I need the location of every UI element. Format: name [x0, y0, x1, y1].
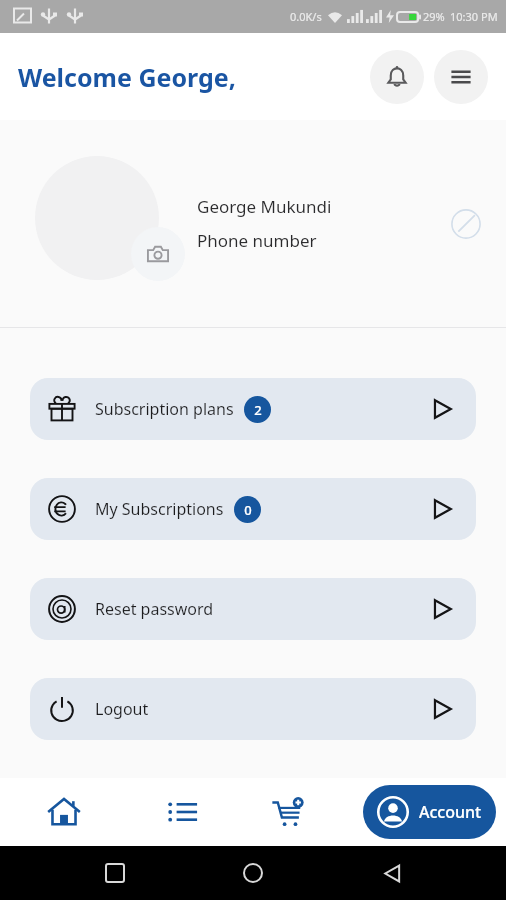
button[interactable]: Change photo: [131, 227, 185, 281]
button[interactable]: Open Reset password: [422, 589, 462, 629]
staticText: Phone number: [197, 229, 317, 252]
staticText: Welcome George,: [18, 60, 236, 94]
button[interactable]: Logout: [30, 678, 476, 740]
staticText: 2: [254, 401, 262, 419]
button[interactable]: Cart: [238, 778, 338, 846]
staticText: Subscription plans: [95, 398, 234, 420]
button[interactable]: Subscription plans: [30, 378, 476, 440]
button[interactable]: Home: [229, 849, 277, 897]
button[interactable]: My Subscriptions: [30, 478, 476, 540]
button[interactable]: Recent apps: [91, 849, 139, 897]
button[interactable]: Open Subscription plans: [422, 389, 462, 429]
button[interactable]: Account: [363, 785, 496, 839]
staticText: Reset password: [95, 598, 214, 620]
button[interactable]: Reset password: [30, 578, 476, 640]
staticText: 29%: [423, 9, 445, 24]
staticText: My Subscriptions: [95, 498, 224, 520]
button[interactable]: Menu: [434, 50, 488, 104]
button[interactable]: Home: [0, 778, 128, 846]
staticText: Logout: [95, 698, 149, 720]
button[interactable]: Edit profile: [444, 202, 488, 246]
button[interactable]: Back: [368, 849, 416, 897]
button[interactable]: Notifications: [370, 50, 424, 104]
button[interactable]: Open Logout: [422, 689, 462, 729]
staticText: Account: [419, 801, 482, 823]
button[interactable]: List: [128, 778, 238, 846]
staticText: 0: [244, 501, 252, 519]
button[interactable]: Open My Subscriptions: [422, 489, 462, 529]
staticText: George Mukundi: [197, 195, 332, 218]
staticText: 10:30 PM: [450, 9, 498, 24]
staticText: 0.0K/s: [290, 9, 322, 24]
